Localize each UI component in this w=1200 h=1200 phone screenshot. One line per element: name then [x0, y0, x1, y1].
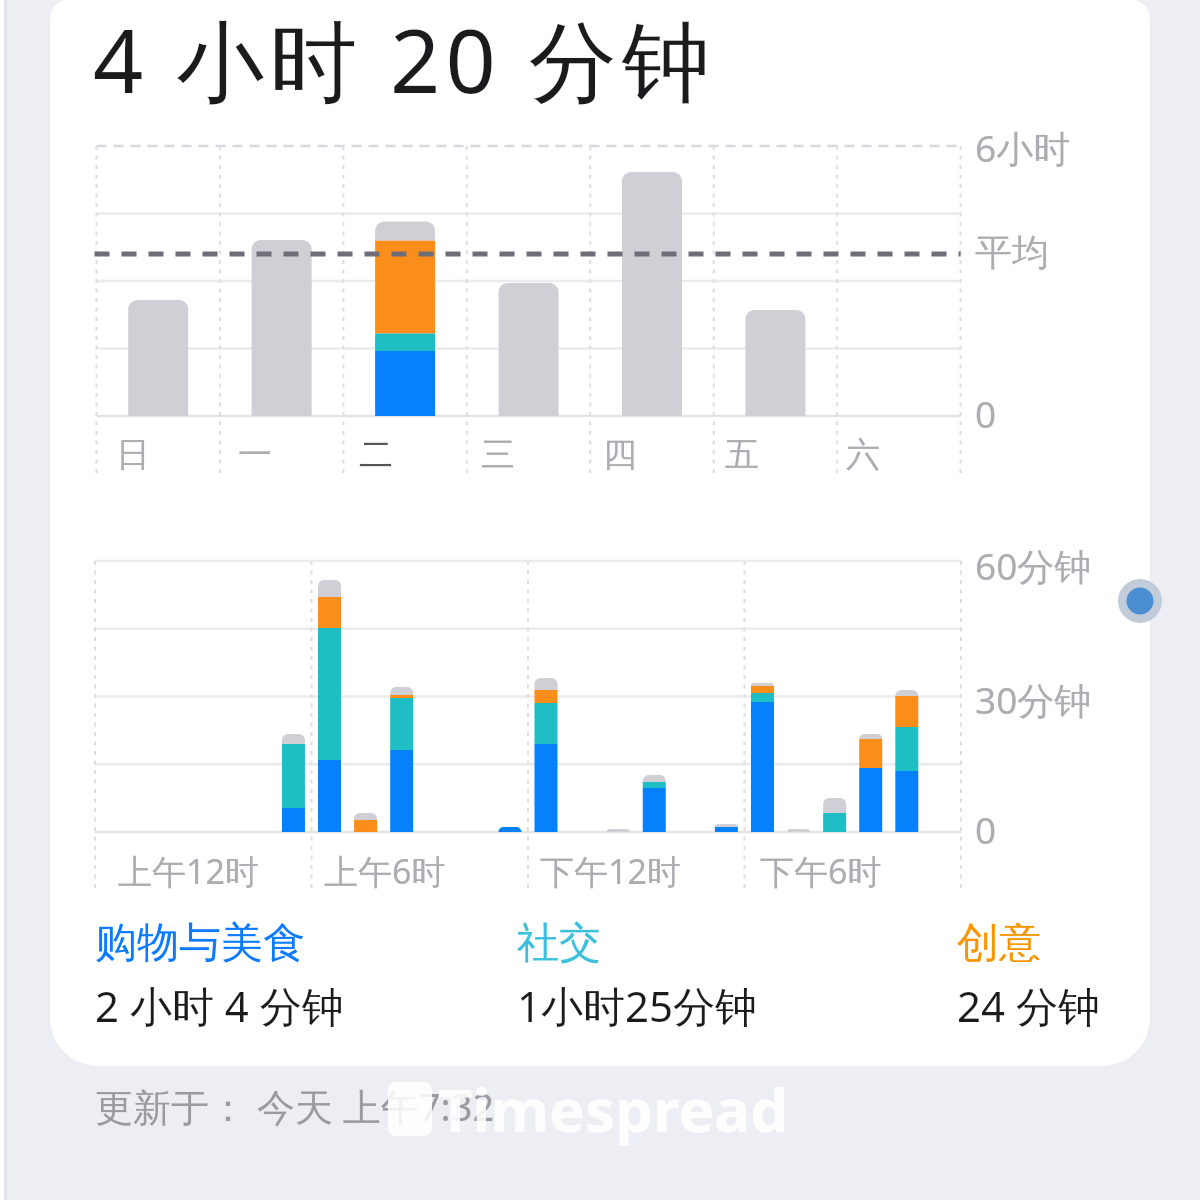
button[interactable]: 日 — [116, 433, 150, 476]
staticText: 上午12时 — [118, 848, 259, 894]
button[interactable]: 一 — [238, 433, 272, 476]
staticText: 二 — [359, 433, 393, 476]
staticText: Timespread — [438, 1068, 789, 1150]
staticText: 日 — [116, 433, 150, 476]
button[interactable]: 购物与美食 — [95, 917, 305, 970]
button[interactable]: 二 — [359, 433, 393, 476]
button[interactable]: 五 — [725, 433, 759, 476]
staticText: 1小时25分钟 — [517, 977, 758, 1034]
button[interactable]: 六 — [846, 433, 880, 476]
staticText: 0 — [975, 388, 997, 438]
staticText: 五 — [725, 433, 759, 476]
button[interactable]: 创意 — [957, 917, 1041, 970]
staticText: 上午6时 — [324, 848, 446, 894]
staticText: 0 — [975, 804, 997, 854]
staticText: 四 — [603, 433, 637, 476]
staticText: 更新于： 今天 上午7:32 — [95, 1080, 495, 1132]
staticText: 六 — [846, 433, 880, 476]
button[interactable]: 三 — [481, 433, 515, 476]
button[interactable]: 四 — [603, 433, 637, 476]
staticText: 三 — [481, 433, 515, 476]
staticText: 购物与美食 — [95, 917, 305, 970]
staticText: 社交 — [517, 917, 601, 970]
staticText: 下午6时 — [760, 848, 882, 894]
staticText: 6小时 — [975, 122, 1071, 173]
staticText: 60分钟 — [975, 540, 1092, 591]
staticText: 一 — [238, 433, 272, 476]
staticText: 2 小时 4 分钟 — [95, 977, 344, 1034]
staticText: 下午12时 — [540, 848, 681, 894]
staticText: 30分钟 — [975, 674, 1092, 725]
button[interactable]: 4 小时 20 分钟 — [93, 0, 715, 119]
staticText: 创意 — [957, 917, 1041, 970]
staticText: 平均 — [975, 229, 1049, 276]
staticText: 24 分钟 — [957, 977, 1100, 1034]
staticText: 4 小时 20 分钟 — [93, 0, 715, 119]
button[interactable]: 社交 — [517, 917, 601, 970]
